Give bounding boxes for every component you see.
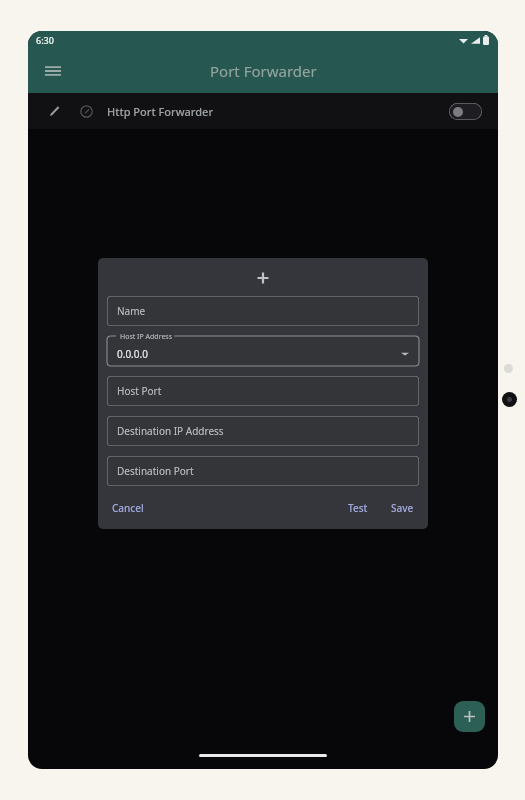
staticText: Destination Port: [117, 464, 194, 478]
button[interactable]: Test: [343, 498, 373, 518]
staticText: Test: [348, 501, 368, 515]
button[interactable]: Enable Http Port Forwarder: [449, 103, 482, 120]
button[interactable]: Destination IP Address: [107, 416, 419, 446]
button[interactable]: Destination Port: [107, 456, 419, 486]
staticText: Host Port: [117, 384, 162, 398]
button[interactable]: Save: [386, 498, 419, 518]
button[interactable]: Edit: [43, 100, 65, 122]
button[interactable]: Host IP Address dropdown: [107, 336, 419, 366]
staticText: 0.0.0.0: [117, 347, 148, 361]
staticText: 6:30: [36, 34, 54, 46]
staticText: Name: [117, 304, 146, 318]
button[interactable]: Speed test: [75, 100, 97, 122]
staticText: Cancel: [112, 501, 144, 515]
button[interactable]: Add port forward: [454, 701, 485, 732]
button[interactable]: Cancel: [107, 498, 149, 518]
staticText: Save: [391, 501, 414, 515]
staticText: Host IP Address: [120, 332, 173, 342]
button[interactable]: Edit: [35, 96, 491, 126]
button[interactable]: Name: [107, 296, 419, 326]
button[interactable]: Host Port: [107, 376, 419, 406]
button[interactable]: Open navigation menu: [37, 55, 69, 87]
staticText: Http Port Forwarder: [107, 104, 214, 119]
staticText: Port Forwarder: [210, 61, 317, 81]
staticText: Destination IP Address: [117, 424, 224, 438]
